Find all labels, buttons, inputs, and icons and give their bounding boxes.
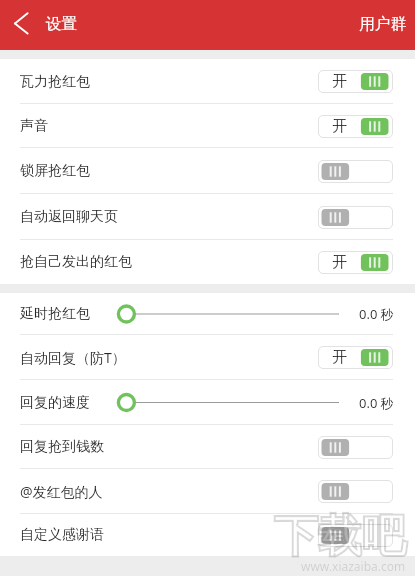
button[interactable]: 回复抢到钱数 [0,425,415,469]
staticText: 回复抢到钱数 [20,438,104,456]
button[interactable]: Back [0,5,40,45]
staticText: 延时抢红包 [20,305,90,323]
staticText: 自动回复（防T） [20,348,126,367]
button[interactable]: 延时抢红包 [0,293,415,335]
staticText: 开 [332,117,347,136]
button[interactable]: Off [318,524,393,547]
button[interactable]: Off [318,480,393,503]
button[interactable]: 自动回复（防T） [0,335,415,380]
staticText: 瓦力抢红包 [20,73,90,91]
button[interactable]: 回复的速度 [0,380,415,425]
button[interactable]: 用户群 [359,14,415,37]
button[interactable]: 声音 [0,104,415,148]
staticText: @发红包的人 [20,482,103,501]
button[interactable]: Off [318,206,393,229]
staticText: 开 [332,348,347,367]
button[interactable]: On [318,346,393,369]
button[interactable]: 自动返回聊天页 [0,194,415,240]
staticText: 回复的速度 [20,394,90,412]
button[interactable]: Off [318,160,393,183]
staticText: 开 [332,253,347,272]
staticText: 锁屏抢红包 [20,162,90,180]
button[interactable]: 抢自己发出的红包 [0,240,415,284]
button[interactable]: On [318,251,393,274]
staticText: 0.0 秒 [359,305,394,323]
button[interactable]: 锁屏抢红包 [0,148,415,194]
staticText: 开 [332,72,347,91]
staticText: 声音 [20,117,48,135]
staticText: 0.0 秒 [359,394,394,412]
button[interactable]: On [318,115,393,138]
staticText: 下载吧 [274,509,406,564]
button[interactable]: 自定义感谢语 [0,514,415,556]
staticText: 设置 [46,14,77,34]
button[interactable]: @发红包的人 [0,469,415,514]
staticText: www.xiazaiba.com [301,558,406,574]
button[interactable]: On [318,70,393,93]
staticText: 自动返回聊天页 [20,208,118,226]
button[interactable]: 瓦力抢红包 [0,59,415,104]
staticText: 抢自己发出的红包 [20,253,132,271]
staticText: 自定义感谢语 [20,526,104,544]
button[interactable]: Off [318,436,393,459]
